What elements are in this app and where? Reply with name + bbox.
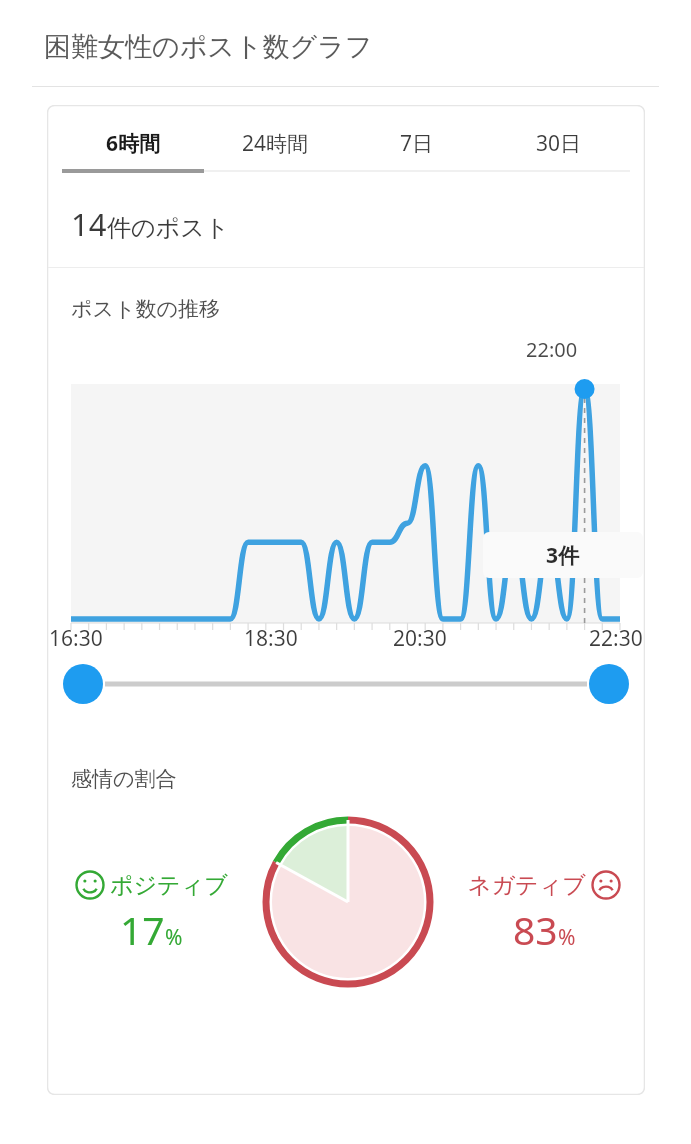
- staticText: 16:30: [49, 624, 103, 653]
- staticText: 20:30: [393, 624, 447, 653]
- button[interactable]: ネガティブ: [468, 870, 621, 956]
- button[interactable]: 時間範囲スライダー: [47, 654, 645, 714]
- button[interactable]: ポジティブ: [75, 870, 228, 956]
- staticText: 14: [71, 203, 107, 245]
- staticText: 83: [513, 903, 558, 956]
- staticText: ネガティブ: [468, 871, 586, 900]
- button[interactable]: 7日: [346, 123, 488, 163]
- button[interactable]: 24時間: [204, 123, 346, 163]
- staticText: 17: [120, 903, 165, 956]
- staticText: 3件: [546, 541, 580, 570]
- staticText: %: [558, 923, 576, 952]
- staticText: %: [165, 923, 183, 952]
- staticText: 6時間: [106, 129, 161, 158]
- staticText: 感情の割合: [71, 766, 177, 792]
- staticText: 7日: [400, 129, 434, 158]
- staticText: ポジティブ: [110, 871, 228, 900]
- staticText: 困難女性のポスト数グラフ: [44, 30, 373, 64]
- button[interactable]: 6時間: [62, 123, 204, 163]
- staticText: 18:30: [244, 624, 298, 653]
- other: ネガティブ: [591, 870, 621, 900]
- other: ポジティブ: [75, 870, 105, 900]
- staticText: 30日: [536, 129, 582, 158]
- staticText: 22:00: [526, 336, 578, 363]
- staticText: 件のポスト: [107, 213, 230, 243]
- button[interactable]: 30日: [488, 123, 630, 163]
- staticText: 22:30: [589, 624, 643, 653]
- staticText: ポスト数の推移: [71, 296, 220, 322]
- staticText: 24時間: [242, 129, 309, 158]
